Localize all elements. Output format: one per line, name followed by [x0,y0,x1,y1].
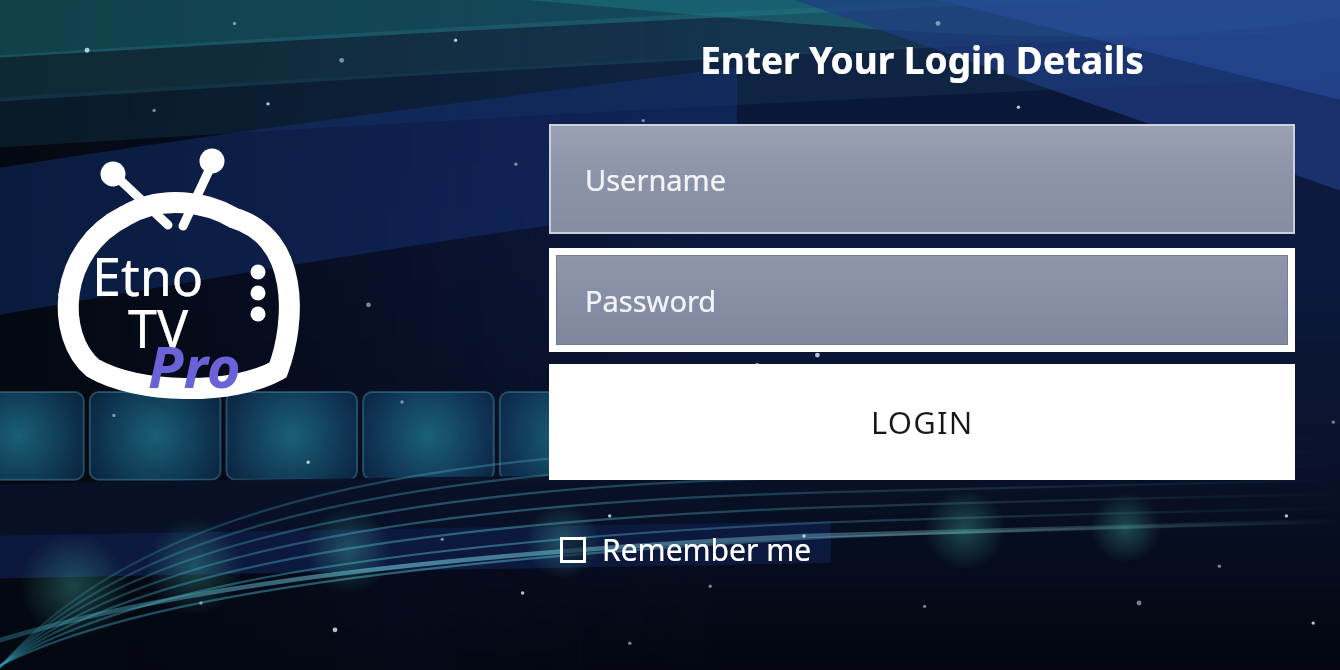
button[interactable]: Username [549,124,1295,234]
staticText: TV [128,292,189,363]
staticText: Remember me [602,529,812,570]
button[interactable]: Password [556,255,1288,345]
staticText: LOGIN [871,401,974,443]
button[interactable]: LOGIN [549,364,1295,480]
other: Etno TV Pro logo [40,140,310,400]
staticText: Enter Your Login Details [549,34,1295,84]
staticText: Etno [92,240,204,311]
staticText: Password [585,281,717,320]
button[interactable]: Remember me [556,526,816,573]
staticText: Username [585,160,727,199]
staticText: Pro [148,326,241,405]
